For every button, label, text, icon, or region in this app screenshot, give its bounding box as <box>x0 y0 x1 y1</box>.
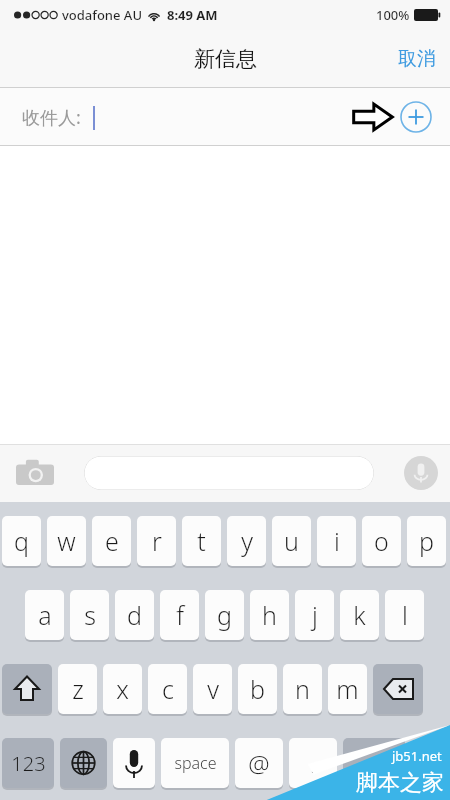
button[interactable]: Camera <box>16 458 54 488</box>
staticText: s <box>84 598 96 632</box>
staticText: p <box>419 524 434 558</box>
button[interactable]: Add contact <box>400 101 432 133</box>
button[interactable]: u <box>272 516 311 566</box>
button[interactable]: d <box>115 590 154 640</box>
staticText: z <box>72 672 84 706</box>
staticText: space <box>174 752 217 774</box>
staticText: v <box>207 672 219 706</box>
button[interactable]: v <box>193 664 232 714</box>
staticText: a <box>38 598 52 632</box>
staticText: jb51.net <box>392 747 442 765</box>
button[interactable]: b <box>238 664 277 714</box>
staticText: e <box>105 524 119 558</box>
button[interactable]: x <box>103 664 142 714</box>
staticText: n <box>295 672 310 706</box>
button[interactable]: 123 <box>2 738 54 788</box>
staticText: l <box>402 598 408 632</box>
button[interactable]: n <box>283 664 322 714</box>
button[interactable]: i <box>317 516 356 566</box>
button[interactable]: h <box>250 590 289 640</box>
staticText: m <box>336 672 359 706</box>
button[interactable]: y <box>227 516 266 566</box>
staticText: t <box>197 524 206 558</box>
staticText: r <box>152 524 162 558</box>
staticText: f <box>176 598 184 632</box>
staticText: c <box>162 672 174 706</box>
button[interactable]: s <box>70 590 109 640</box>
button[interactable]: space <box>161 738 229 788</box>
button[interactable]: r <box>137 516 176 566</box>
staticText: w <box>57 524 76 558</box>
button[interactable]: e <box>92 516 131 566</box>
button[interactable]: Change keyboard <box>60 738 107 788</box>
button[interactable]: l <box>385 590 424 640</box>
button[interactable]: Voice message <box>404 456 438 490</box>
button[interactable]: @ <box>235 738 283 788</box>
staticText: b <box>250 672 265 706</box>
staticText: 收件人: <box>22 105 81 130</box>
staticText: u <box>284 524 299 558</box>
button[interactable]: z <box>58 664 97 714</box>
button[interactable]: o <box>362 516 401 566</box>
staticText: o <box>374 524 389 558</box>
button[interactable]: m <box>328 664 367 714</box>
staticText: . <box>310 747 316 780</box>
button[interactable]: w <box>47 516 86 566</box>
staticText: 脚本之家 <box>356 769 444 797</box>
staticText: 新信息 <box>194 46 257 72</box>
button[interactable]: c <box>148 664 187 714</box>
button[interactable]: f <box>160 590 199 640</box>
staticText: 100% <box>376 6 410 24</box>
button[interactable] <box>84 456 374 490</box>
button[interactable]: Dictation <box>113 738 155 788</box>
staticText: i <box>334 524 340 558</box>
button[interactable] <box>343 738 405 788</box>
staticText: g <box>217 598 232 632</box>
button[interactable]: a <box>25 590 64 640</box>
button[interactable]: Send <box>352 100 394 134</box>
staticText: j <box>312 598 318 632</box>
button[interactable]: j <box>295 590 334 640</box>
button[interactable]: Shift <box>2 664 52 714</box>
staticText: k <box>353 598 366 632</box>
staticText: 123 <box>11 750 46 777</box>
staticText: h <box>262 598 277 632</box>
button[interactable]: q <box>2 516 41 566</box>
staticText: y <box>241 524 253 558</box>
button[interactable]: . <box>289 738 337 788</box>
staticText: q <box>14 524 29 558</box>
staticText: d <box>127 598 142 632</box>
button[interactable]: Backspace <box>373 664 423 714</box>
staticText: 8:49 AM <box>167 6 218 24</box>
button[interactable]: 取消 <box>384 39 450 79</box>
button[interactable]: k <box>340 590 379 640</box>
button[interactable]: p <box>407 516 446 566</box>
staticText: vodafone AU <box>62 6 142 24</box>
staticText: @ <box>248 747 270 780</box>
button[interactable]: g <box>205 590 244 640</box>
button[interactable]: t <box>182 516 221 566</box>
staticText: 取消 <box>398 47 436 71</box>
staticText: x <box>116 672 129 706</box>
